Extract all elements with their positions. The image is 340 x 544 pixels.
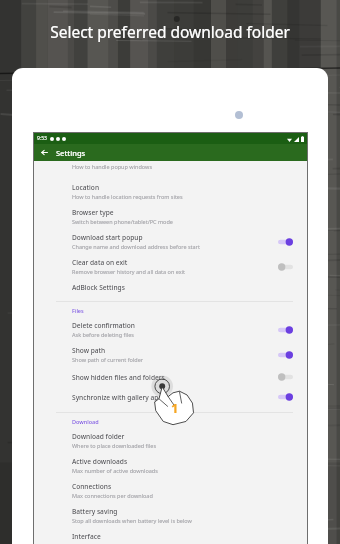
button[interactable]: Browser type — [34, 204, 307, 229]
staticText: AdBlock Settings — [72, 283, 125, 292]
staticText: Location — [72, 183, 100, 192]
staticText: Interface — [72, 532, 101, 541]
button[interactable] — [275, 324, 295, 336]
staticText: How to handle popup windows — [72, 163, 153, 170]
staticText: Select preferred download folder — [50, 21, 290, 42]
button[interactable]: Download folder — [34, 428, 307, 453]
staticText: Synchronize with gallery app — [72, 393, 163, 402]
button[interactable]: Delete confirmation — [34, 317, 307, 342]
button[interactable] — [275, 391, 295, 403]
staticText: Ask before deleting files — [72, 331, 135, 338]
button[interactable]: Connections — [34, 478, 307, 503]
staticText: Switch between phone/tablet/PC mode — [72, 218, 173, 225]
staticText: 1 — [171, 399, 179, 417]
staticText: Stop all downloads when battery level is… — [72, 517, 192, 524]
button[interactable]: Download start popup — [34, 229, 307, 254]
staticText: Show path of current folder — [72, 356, 144, 363]
staticText: Download folder — [72, 432, 125, 441]
staticText: Active downloads — [72, 457, 128, 466]
staticText: Download — [72, 418, 99, 425]
staticText: Max connections per download — [72, 492, 153, 499]
button[interactable] — [275, 371, 295, 383]
button[interactable] — [275, 236, 295, 248]
staticText: Files — [72, 307, 84, 314]
staticText: Where to place downloaded files — [72, 442, 157, 449]
staticText: Remove browser history and all data on e… — [72, 268, 186, 275]
staticText: Browser type — [72, 208, 114, 217]
staticText: Connections — [72, 482, 112, 491]
staticText: Battery saving — [72, 507, 118, 516]
staticText: 9:53 — [37, 135, 47, 142]
staticText: Delete confirmation — [72, 321, 135, 330]
staticText: How to handle location requests from sit… — [72, 193, 183, 200]
button[interactable]: Battery saving — [34, 503, 307, 528]
button[interactable]: Clear data on exit — [34, 254, 307, 279]
button[interactable] — [275, 261, 295, 273]
staticText: Show path — [72, 346, 106, 355]
staticText: Change name and download address before … — [72, 243, 200, 250]
staticText: Download start popup — [72, 233, 143, 242]
button[interactable]: Location — [34, 179, 307, 204]
button[interactable]: Back — [39, 147, 50, 158]
button[interactable]: Active downloads — [34, 453, 307, 478]
staticText: Max number of active downloads — [72, 467, 158, 474]
staticText: Show hidden files and folders — [72, 373, 165, 382]
button[interactable]: Show path — [34, 342, 307, 367]
button[interactable] — [275, 349, 295, 361]
staticText: Clear data on exit — [72, 258, 128, 267]
button[interactable]: AdBlock Settings — [34, 279, 307, 296]
button[interactable]: Show hidden files and folders — [34, 367, 307, 387]
staticText: Settings — [56, 148, 86, 158]
button[interactable]: Synchronize with gallery app — [34, 387, 307, 407]
button[interactable]: Interface — [34, 528, 307, 544]
